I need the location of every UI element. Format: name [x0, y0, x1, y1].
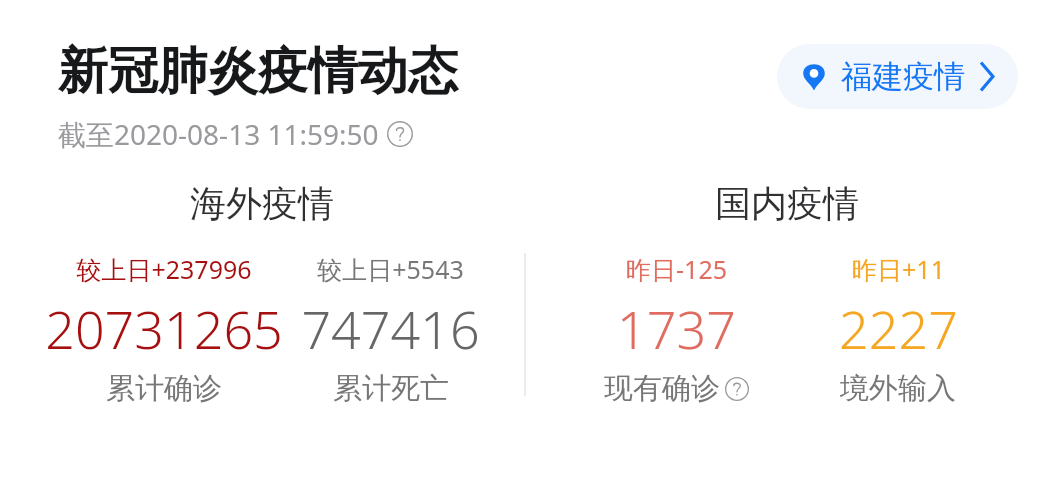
staticText: 较上日+237996 [76, 252, 252, 286]
staticText: 昨日+11 [852, 252, 945, 286]
staticText: 昨日-125 [626, 252, 727, 286]
staticText: 截至2020-08-13 11:59:50 [58, 115, 379, 153]
staticText: 海外疫情 [190, 181, 334, 226]
staticText: 现有确诊 [604, 370, 720, 407]
staticText: 境外输入 [840, 370, 956, 407]
staticText: 较上日+5543 [317, 252, 464, 286]
button[interactable]: 较上日+5543 [301, 252, 480, 407]
staticText: 1737 [617, 293, 736, 364]
staticText: 新冠肺炎疫情动态 [58, 40, 458, 103]
staticText: 2227 [839, 293, 958, 364]
button[interactable]: 较上日+237996 [45, 252, 283, 407]
button[interactable]: 福建疫情 [777, 44, 1018, 109]
staticText: 福建疫情 [841, 57, 965, 96]
staticText: 20731265 [45, 293, 283, 364]
button[interactable]: 昨日+11 [787, 252, 1009, 407]
staticText: 累计死亡 [333, 370, 449, 407]
staticText: 747416 [301, 293, 480, 364]
button[interactable]: 昨日-125 [565, 252, 787, 407]
staticText: 国内疫情 [715, 181, 859, 226]
staticText: 累计确诊 [106, 370, 222, 407]
